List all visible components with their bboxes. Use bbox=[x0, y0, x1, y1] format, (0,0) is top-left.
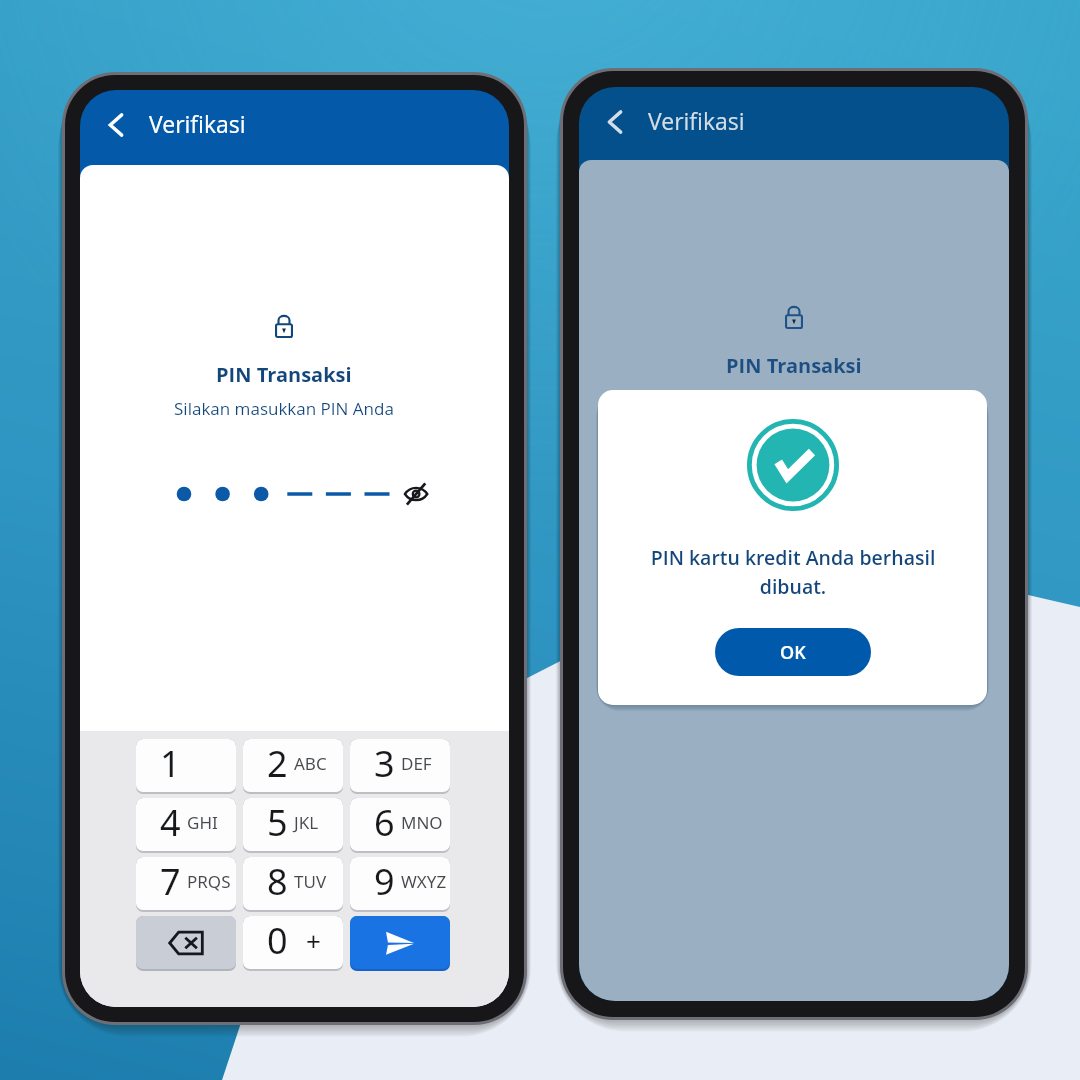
staticText: WXYZ bbox=[401, 870, 447, 893]
staticText: MNO bbox=[401, 811, 443, 834]
button[interactable]: 6 bbox=[350, 798, 450, 851]
staticText: 8 bbox=[267, 857, 288, 906]
button[interactable]: Back bbox=[97, 106, 135, 144]
staticText: TUV bbox=[294, 870, 327, 893]
staticText: PIN kartu kredit Anda berhasil dibuat. bbox=[638, 544, 948, 600]
button[interactable]: 8 bbox=[243, 857, 343, 910]
staticText: DEF bbox=[401, 752, 432, 775]
staticText: GHI bbox=[187, 811, 218, 834]
staticText: + bbox=[306, 923, 321, 958]
staticText: Verifikasi bbox=[149, 108, 246, 139]
staticText: OK bbox=[780, 640, 806, 665]
staticText: 0 bbox=[267, 916, 288, 965]
staticText: 5 bbox=[267, 798, 288, 847]
staticText: 7 bbox=[160, 857, 181, 906]
button[interactable]: Show PIN bbox=[400, 479, 430, 509]
button[interactable]: 5 bbox=[243, 798, 343, 851]
staticText: Verifikasi bbox=[648, 105, 745, 136]
button[interactable]: Send bbox=[350, 916, 450, 969]
button[interactable]: 4 bbox=[136, 798, 236, 851]
staticText: JKL bbox=[294, 811, 319, 834]
button[interactable]: 9 bbox=[350, 857, 450, 910]
staticText: PIN Transaksi bbox=[216, 361, 352, 388]
button[interactable]: Backspace bbox=[136, 916, 236, 969]
button[interactable]: OK bbox=[715, 628, 871, 676]
staticText: PIN Transaksi bbox=[726, 352, 862, 379]
button[interactable]: Back bbox=[596, 103, 634, 141]
staticText: 9 bbox=[374, 857, 395, 906]
staticText: Silakan masukkan PIN Anda bbox=[174, 397, 394, 420]
button[interactable]: 0 bbox=[243, 916, 343, 969]
button[interactable]: 1 bbox=[136, 739, 236, 792]
staticText: 4 bbox=[160, 798, 181, 847]
staticText: 3 bbox=[374, 739, 395, 788]
staticText: 2 bbox=[267, 739, 288, 788]
staticText: 1 bbox=[160, 739, 181, 788]
button[interactable]: 2 bbox=[243, 739, 343, 792]
button[interactable]: 3 bbox=[350, 739, 450, 792]
staticText: ABC bbox=[294, 752, 327, 775]
staticText: 6 bbox=[374, 798, 395, 847]
button[interactable]: 7 bbox=[136, 857, 236, 910]
staticText: PRQS bbox=[187, 870, 231, 893]
